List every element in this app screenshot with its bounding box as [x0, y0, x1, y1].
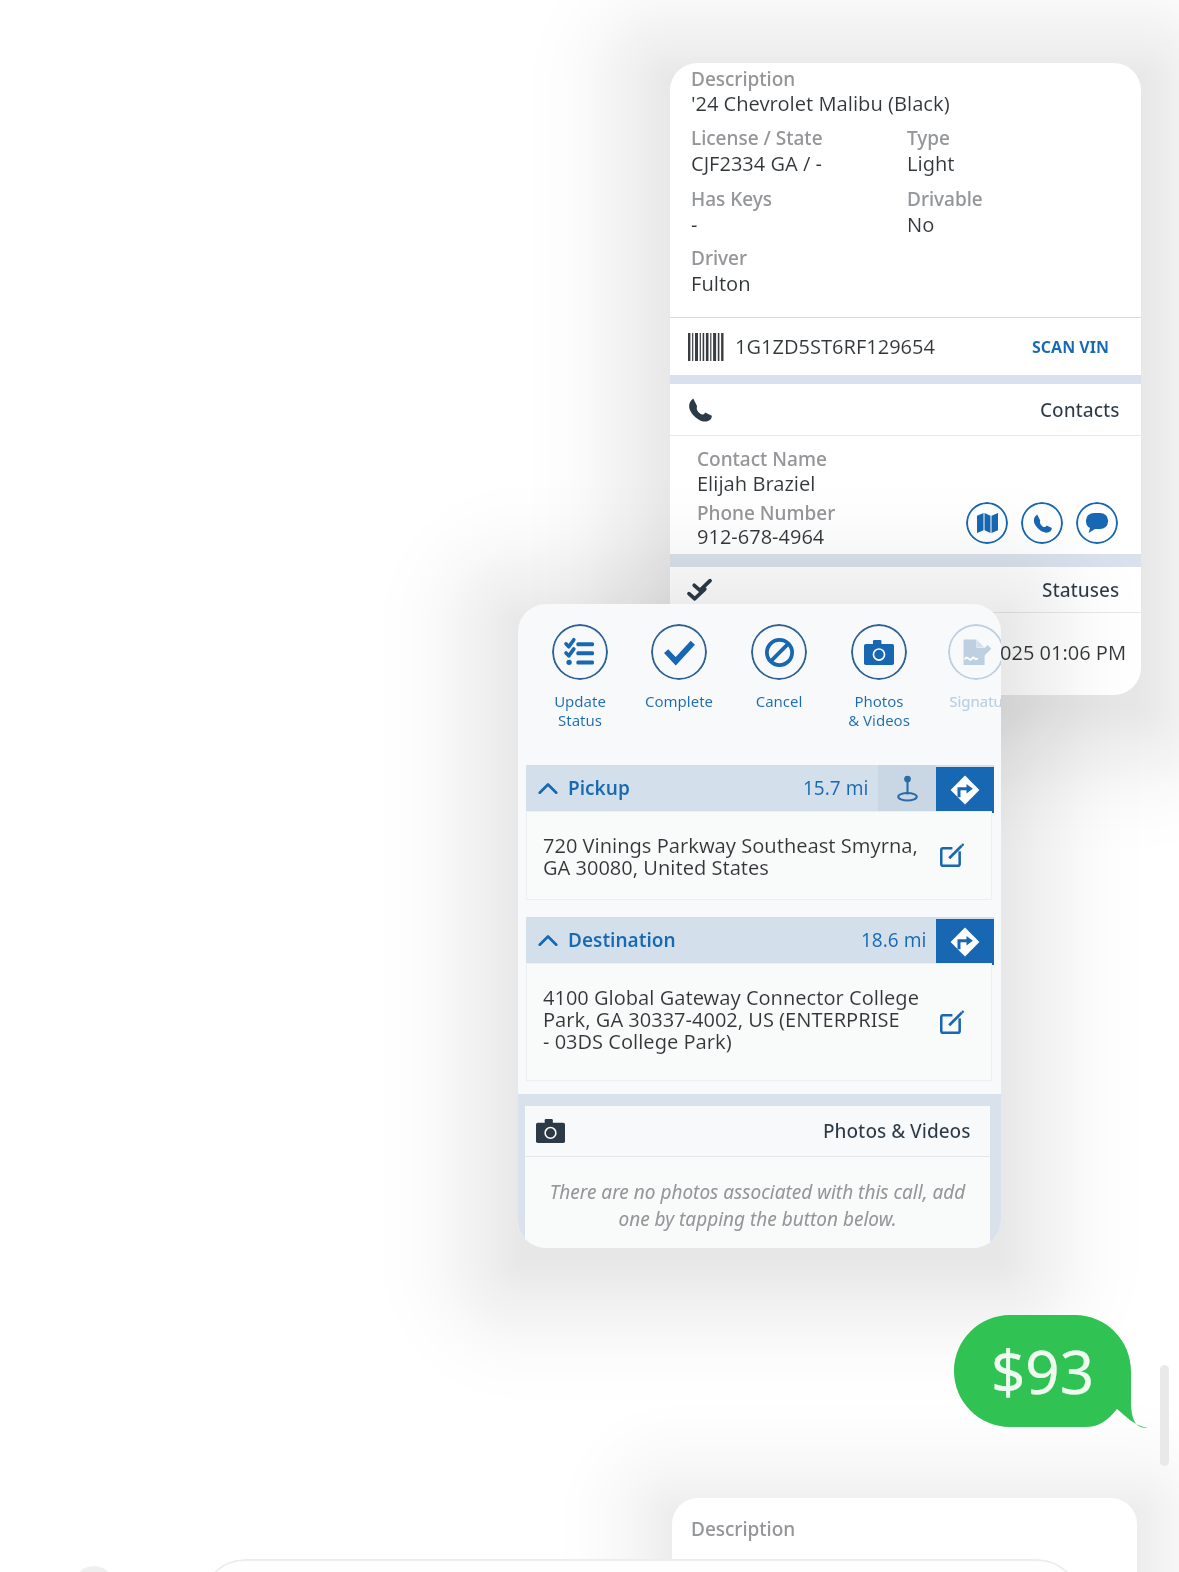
button[interactable]: Photos & Videos	[836, 624, 922, 730]
staticText: 1G1ZD5ST6RF129654	[735, 333, 935, 360]
staticText: Driver	[691, 245, 748, 271]
button[interactable]: Edit address	[937, 1008, 965, 1036]
staticText: Drivable	[907, 186, 983, 212]
staticText: License / State	[691, 125, 823, 151]
staticText: Elijah Braziel	[697, 470, 816, 497]
staticText: Description	[691, 1516, 796, 1542]
button[interactable]: Call	[1021, 502, 1063, 544]
button[interactable]: Pin location	[878, 765, 936, 811]
button[interactable]: Screenshot attachment: vehicle details	[670, 63, 1141, 695]
button[interactable]: Edit address	[937, 841, 965, 869]
staticText: Signatu	[933, 691, 1001, 711]
button[interactable]: Complete	[636, 624, 722, 711]
button[interactable]: 4100 Global Gateway Connector College Pa…	[526, 963, 992, 1081]
staticText: Statuses	[1042, 577, 1120, 603]
staticText: Light	[907, 150, 955, 177]
staticText: Pickup	[568, 775, 630, 801]
staticText: Photos & Videos	[836, 691, 922, 730]
button[interactable]: Update Status	[537, 624, 623, 730]
button[interactable]: Message input	[201, 1559, 1081, 1572]
staticText: Photos & Videos	[823, 1118, 971, 1144]
button[interactable]: $93	[954, 1315, 1131, 1427]
button[interactable]: Pickup	[539, 775, 869, 801]
staticText: Contact Name	[697, 446, 827, 472]
staticText: Has Keys	[691, 186, 773, 212]
button[interactable]: Navigate	[936, 919, 994, 965]
button[interactable]: Message	[1076, 502, 1118, 544]
staticText: There are no photos associated with this…	[525, 1179, 990, 1232]
staticText: CJF2334 GA / -	[691, 150, 823, 177]
button[interactable]: 720 Vinings Parkway Southeast Smyrna, GA…	[526, 811, 992, 900]
staticText: Description	[691, 66, 796, 92]
staticText: No	[907, 211, 935, 238]
staticText: Destination	[568, 927, 676, 953]
staticText: '24 Chevrolet Malibu (Black)	[691, 90, 950, 117]
button[interactable]: Add attachment	[74, 1566, 114, 1572]
staticText: Update Status	[537, 691, 623, 730]
staticText: 18.6 mi	[861, 927, 927, 953]
staticText: $93	[991, 1330, 1094, 1412]
button[interactable]: Destination	[539, 927, 927, 953]
staticText: Complete	[636, 691, 722, 711]
button[interactable]: Statuses	[670, 567, 1141, 612]
staticText: 720 Vinings Parkway Southeast Smyrna, GA…	[543, 832, 918, 881]
staticText: 025 01:06 PM	[1000, 639, 1127, 666]
button[interactable]: 1G1ZD5ST6RF129654	[670, 318, 1141, 375]
button[interactable]: Map	[966, 502, 1008, 544]
button[interactable]: Navigate	[936, 767, 994, 813]
staticText: 15.7 mi	[803, 775, 869, 801]
staticText: Type	[907, 125, 951, 151]
button[interactable]: Signatu	[933, 624, 1001, 711]
staticText: SCAN VIN	[1032, 336, 1109, 358]
staticText: Cancel	[736, 691, 822, 711]
staticText: Fulton	[691, 270, 751, 297]
button[interactable]: Cancel	[736, 624, 822, 711]
staticText: Phone Number	[697, 500, 836, 526]
button[interactable]: Contacts	[670, 384, 1141, 435]
staticText: Contacts	[1040, 397, 1120, 423]
staticText: 4100 Global Gateway Connector College Pa…	[543, 984, 919, 1055]
staticText: -	[691, 211, 698, 238]
staticText: 912-678-4964	[697, 523, 825, 550]
button[interactable]: Photos & Videos	[536, 1106, 971, 1156]
